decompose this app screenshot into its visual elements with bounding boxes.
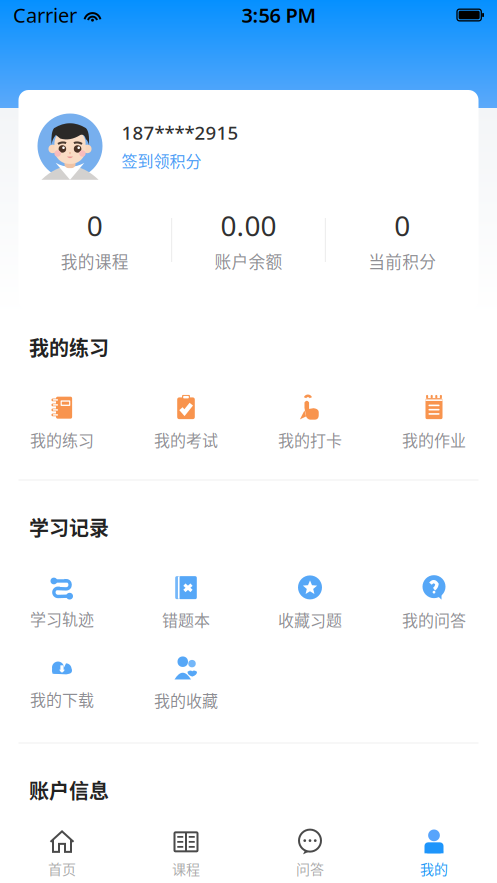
staticText: 我的问答	[402, 608, 466, 631]
button[interactable]: 我的	[375, 825, 493, 883]
button[interactable]: 我的收藏	[131, 653, 241, 715]
button[interactable]: 我的考试	[131, 392, 241, 454]
staticText: Carrier	[13, 2, 77, 28]
staticText: 我的课程	[61, 249, 129, 273]
button[interactable]: 问答	[251, 825, 369, 883]
staticText: 学习记录	[29, 512, 109, 541]
staticText: 我的	[420, 858, 448, 879]
button[interactable]: 首页	[3, 825, 121, 883]
staticText: 签到领积分	[121, 149, 201, 172]
staticText: 首页	[48, 858, 76, 879]
staticText: 当前积分	[368, 249, 436, 273]
staticText: 问答	[296, 858, 324, 879]
staticText: 187****2915	[121, 120, 238, 145]
button[interactable]: 我的作业	[379, 392, 489, 454]
staticText: 3:56 PM	[241, 2, 316, 28]
staticText: 我的收藏	[154, 688, 218, 712]
button[interactable]: 我的打卡	[255, 392, 365, 454]
staticText: 账户信息	[29, 775, 109, 804]
staticText: 0	[87, 207, 103, 244]
staticText: 收藏习题	[278, 608, 342, 631]
staticText: 0	[394, 207, 410, 244]
staticText: 我的作业	[402, 428, 466, 451]
button[interactable]: 错题本	[131, 572, 241, 634]
staticText: 课程	[172, 858, 200, 879]
button[interactable]: 收藏习题	[255, 572, 365, 634]
button[interactable]: 学习轨迹	[7, 572, 117, 634]
staticText: 错题本	[162, 608, 210, 631]
button[interactable]: 我的问答	[379, 572, 489, 634]
staticText: 账户余额	[214, 249, 282, 273]
staticText: 学习轨迹	[30, 607, 94, 630]
button[interactable]: 我的下载	[7, 653, 117, 715]
button[interactable]: 我的练习	[7, 392, 117, 454]
button[interactable]: 课程	[127, 825, 245, 883]
staticText: 0.00	[220, 207, 276, 244]
staticText: 我的练习	[30, 428, 94, 451]
staticText: 我的练习	[29, 332, 109, 361]
staticText: 我的考试	[154, 428, 218, 451]
staticText: 我的打卡	[278, 428, 342, 451]
button[interactable]: 签到领积分	[121, 149, 201, 172]
staticText: 我的下载	[30, 687, 94, 711]
